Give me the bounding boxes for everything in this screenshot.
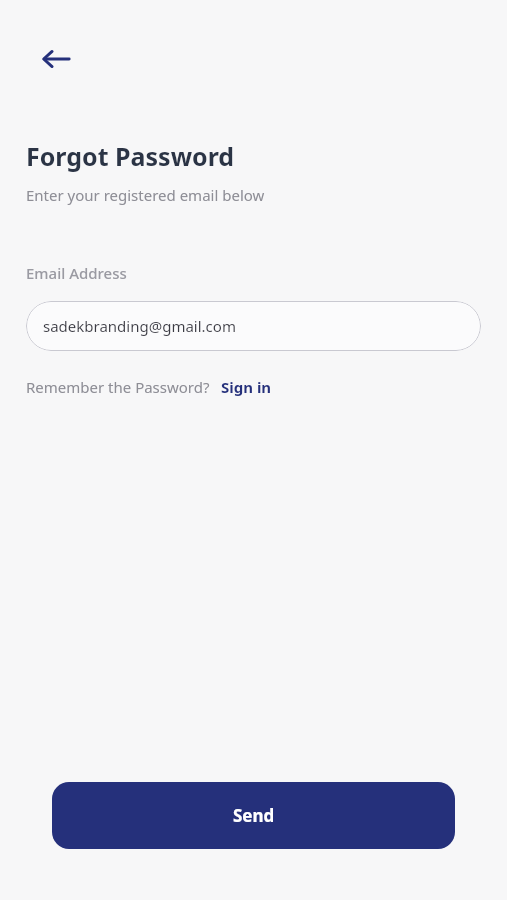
button[interactable]: Sign in (221, 377, 272, 397)
staticText: Enter your registered email below (26, 185, 265, 205)
button[interactable]: Send (52, 782, 455, 849)
staticText: Send (233, 804, 275, 827)
staticText: Email Address (26, 263, 127, 283)
staticText: Remember the Password? (26, 377, 210, 397)
button[interactable]: Back (33, 36, 79, 82)
staticText: Sign in (221, 377, 272, 397)
staticText: Forgot Password (26, 139, 235, 173)
staticText: sadekbranding@gmail.com (43, 316, 236, 336)
button[interactable]: sadekbranding@gmail.com (26, 301, 481, 351)
